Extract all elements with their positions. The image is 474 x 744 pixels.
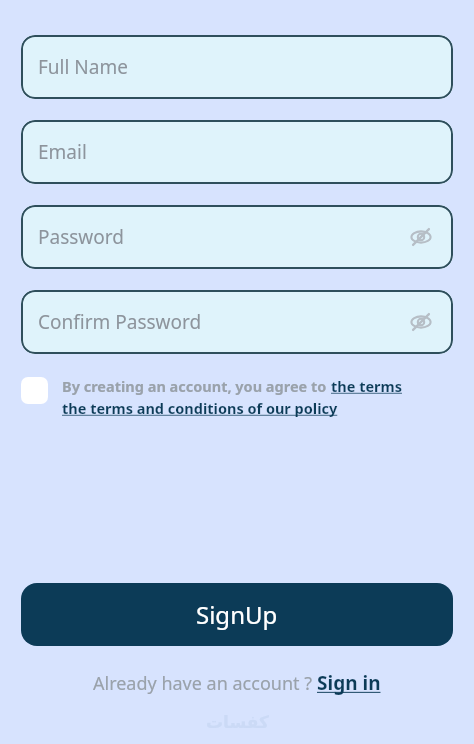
staticText: Email (38, 139, 87, 165)
staticText: كفسات (206, 712, 269, 732)
staticText: Full Name (38, 54, 128, 80)
button[interactable]: Agree to terms checkbox (21, 377, 48, 404)
staticText: SignUp (196, 598, 278, 631)
staticText: By creating an account, you agree to (62, 376, 331, 396)
staticText: the terms (331, 376, 402, 396)
button[interactable]: Toggle confirm password visibility (405, 306, 437, 338)
staticText: Confirm Password (38, 309, 202, 335)
button[interactable]: Confirm Password (21, 290, 453, 354)
button[interactable]: Password (21, 205, 453, 269)
staticText: Sign in (317, 670, 381, 696)
staticText: the terms and conditions of our policy (62, 398, 338, 418)
staticText: Password (38, 224, 124, 250)
button[interactable]: Email (21, 120, 453, 184)
button[interactable]: Toggle password visibility (405, 221, 437, 253)
button[interactable]: Agree to terms checkbox (21, 376, 453, 418)
button[interactable]: Sign in (317, 670, 381, 696)
staticText: Already have an account ? (93, 671, 317, 696)
button[interactable]: Full Name (21, 35, 453, 99)
button[interactable]: SignUp (21, 583, 453, 646)
